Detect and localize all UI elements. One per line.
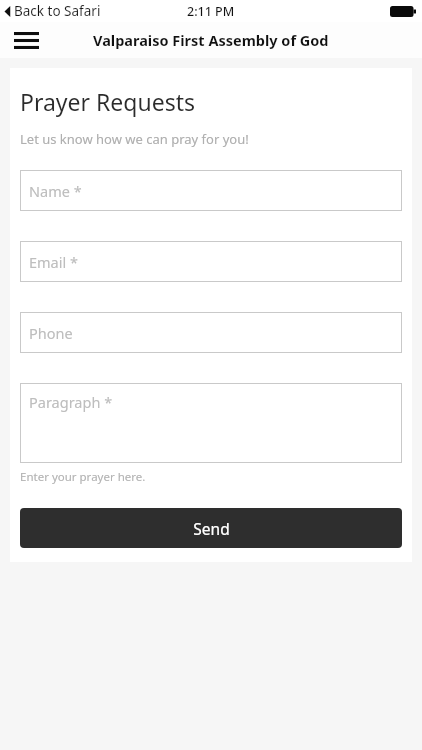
staticText: Send [193, 518, 230, 539]
button[interactable]: Send [20, 508, 402, 548]
staticText: Paragraph * [29, 392, 113, 412]
staticText: Name * [29, 181, 82, 201]
button[interactable]: Name * [20, 170, 402, 211]
staticText: Enter your prayer here. [20, 469, 146, 485]
staticText: Email * [29, 252, 78, 272]
staticText: Back to Safari [14, 2, 101, 20]
button[interactable]: Paragraph * [20, 383, 402, 463]
staticText: Let us know how we can pray for you! [20, 130, 249, 148]
button[interactable]: Phone [20, 312, 402, 353]
button[interactable]: Back to Safari [4, 2, 101, 20]
button[interactable]: Email * [20, 241, 402, 282]
button[interactable]: Menu [5, 23, 47, 57]
staticText: Phone [29, 323, 73, 343]
staticText: Valparaiso First Assembly of God [93, 30, 329, 50]
staticText: 2:11 PM [187, 3, 235, 20]
staticText: Prayer Requests [20, 86, 195, 117]
